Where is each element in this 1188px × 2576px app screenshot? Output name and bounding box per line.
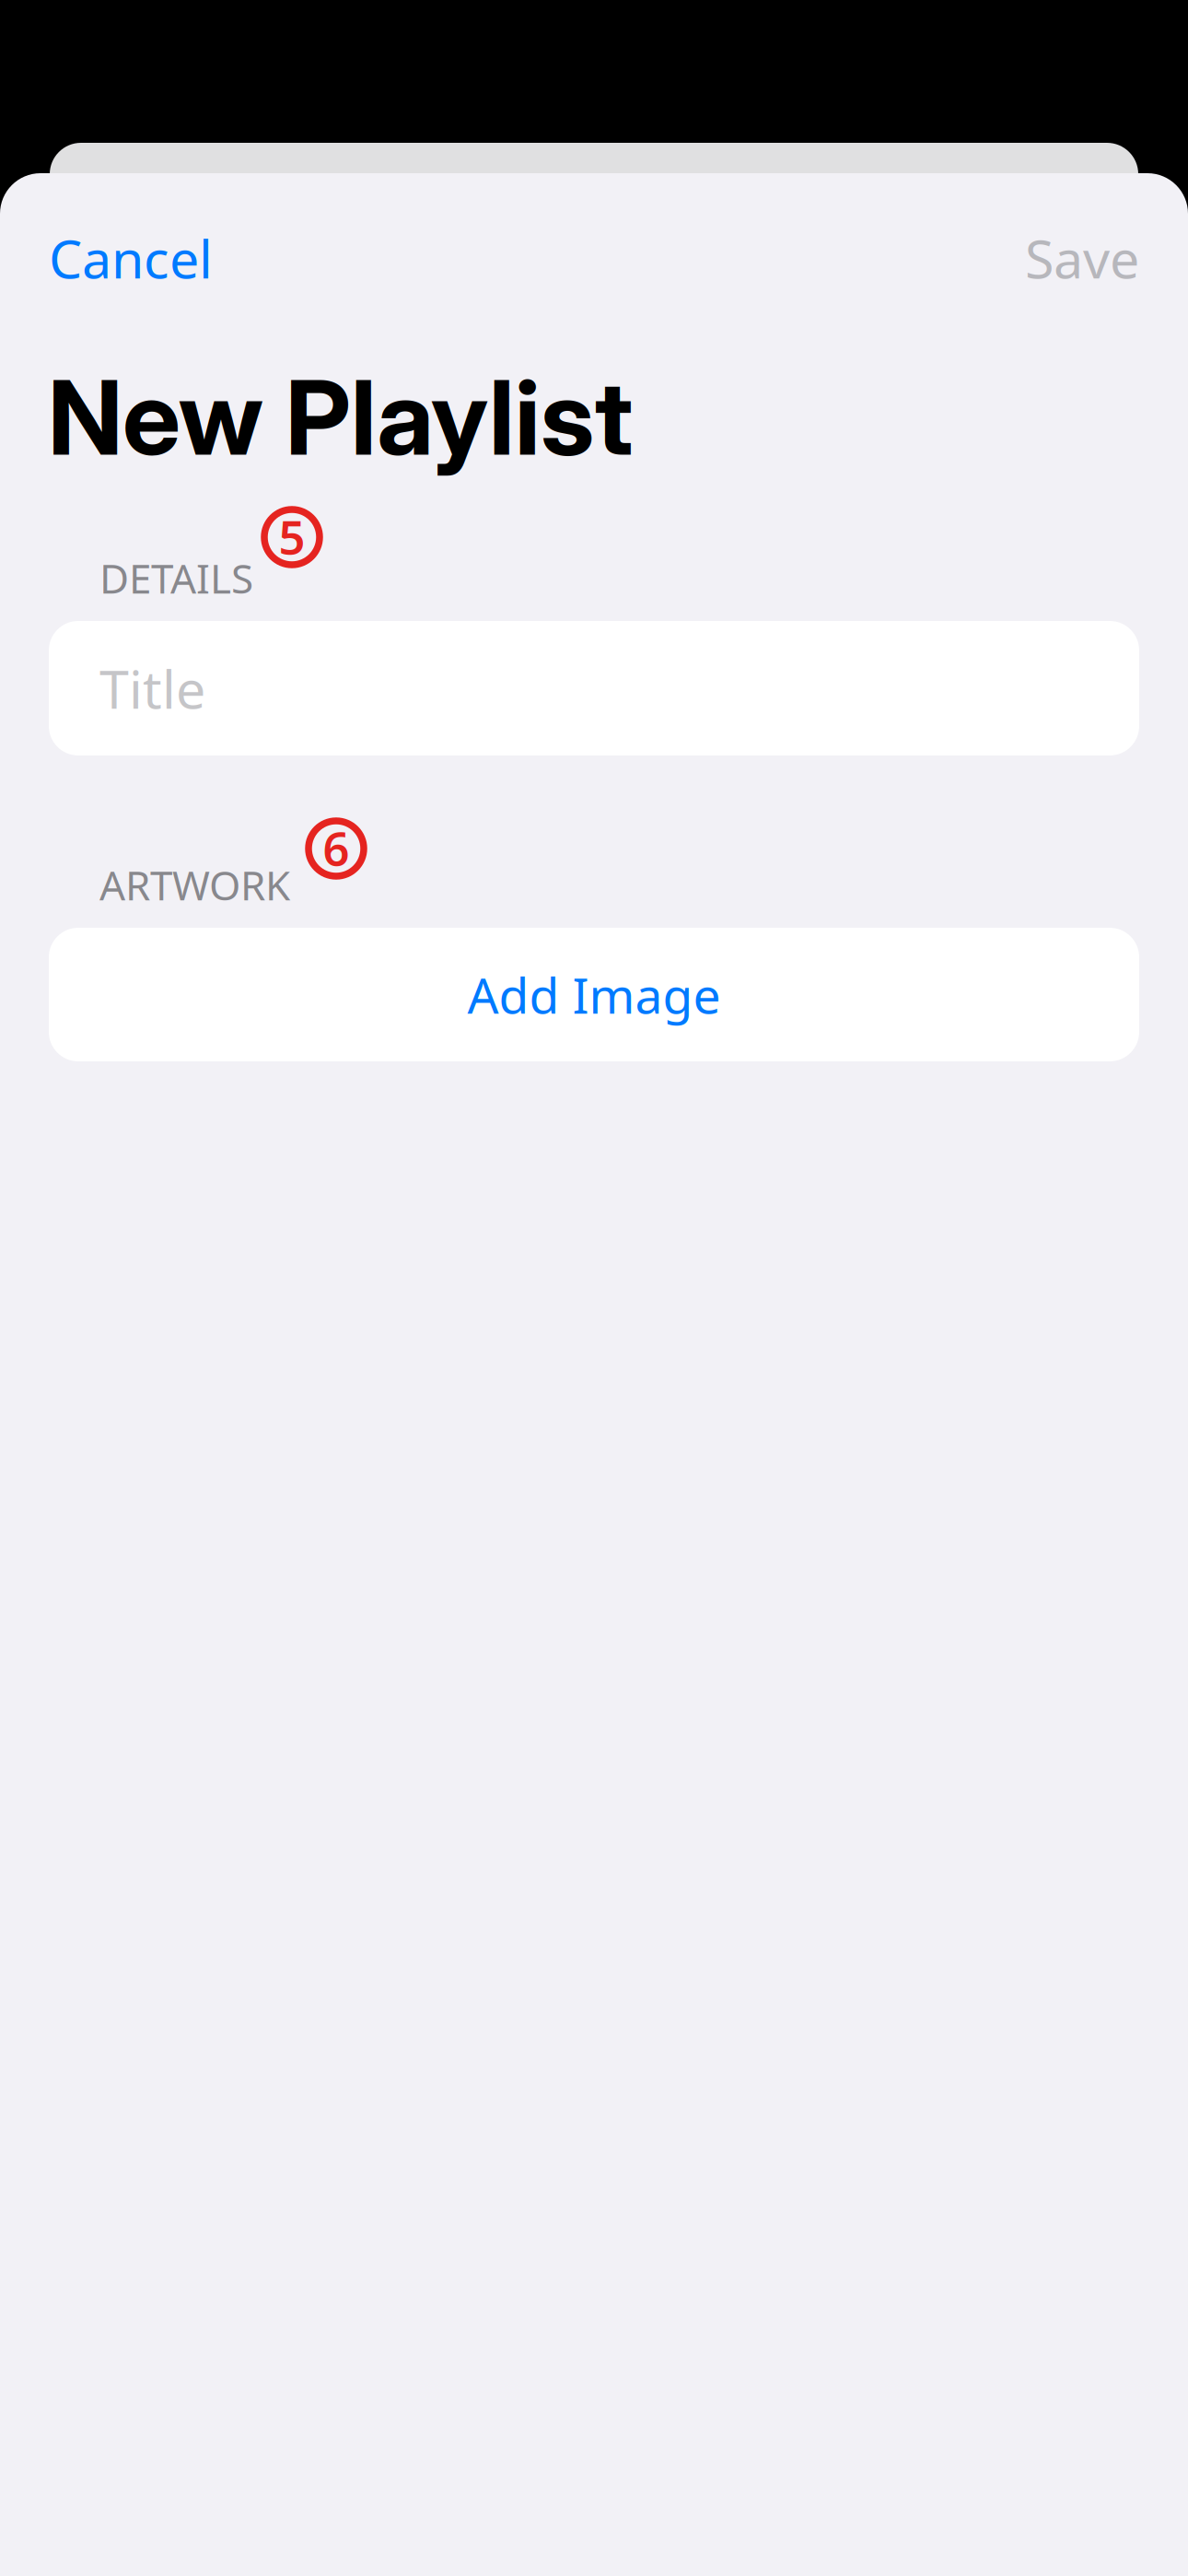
button[interactable]: Add Image xyxy=(49,928,1139,1061)
staticText: 5 xyxy=(279,505,305,567)
staticText: Title xyxy=(99,653,205,723)
staticText: DETAILS xyxy=(99,551,253,605)
staticText: 6 xyxy=(323,817,349,879)
staticText: Add Image xyxy=(467,962,721,1027)
staticText: New Playlist xyxy=(48,355,633,480)
button[interactable]: Cancel xyxy=(49,210,227,306)
staticText: Cancel xyxy=(49,223,213,293)
staticText: Save xyxy=(1025,223,1139,293)
staticText: ARTWORK xyxy=(99,858,290,912)
button[interactable]: Save xyxy=(1010,210,1139,306)
button[interactable]: Title xyxy=(49,621,1139,755)
